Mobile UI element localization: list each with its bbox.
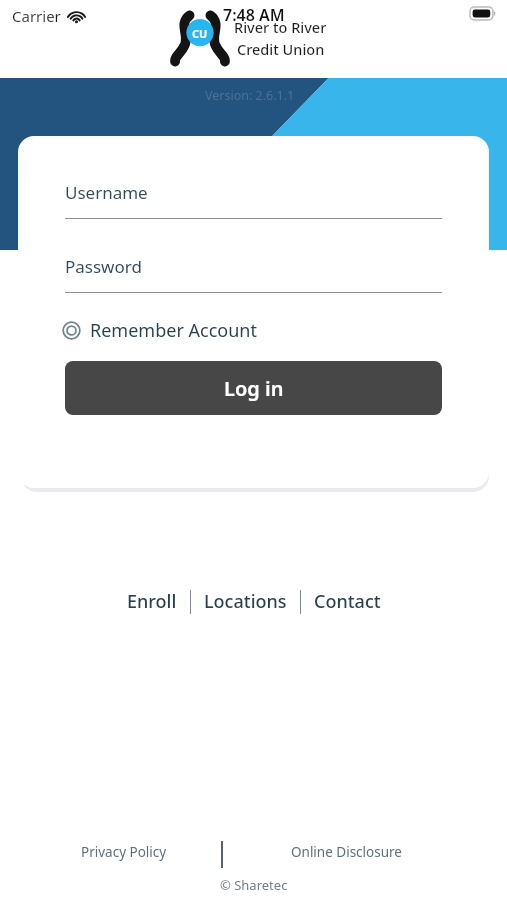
staticText: Remember Account bbox=[90, 318, 257, 343]
staticText: Password bbox=[65, 255, 142, 278]
button[interactable]: Contact bbox=[309, 586, 386, 617]
button[interactable]: Password bbox=[65, 255, 442, 293]
button[interactable]: Privacy Policy bbox=[79, 841, 169, 863]
staticText: Credit Union bbox=[237, 39, 325, 59]
staticText: © Sharetec bbox=[220, 876, 288, 894]
staticText: 7:48 AM bbox=[223, 4, 285, 26]
staticText: Username bbox=[65, 181, 148, 204]
button[interactable]: Online Disclosure bbox=[289, 841, 404, 863]
staticText: CU bbox=[192, 26, 208, 41]
staticText: Carrier bbox=[12, 6, 61, 26]
staticText: River to River bbox=[234, 17, 327, 37]
other: River to River Credit Union logo bbox=[171, 13, 229, 62]
button[interactable]: Locations bbox=[199, 586, 292, 617]
button[interactable]: Remember Account bbox=[62, 314, 257, 346]
button[interactable]: Enroll bbox=[122, 586, 182, 617]
button[interactable]: Username bbox=[65, 181, 442, 219]
staticText: Log in bbox=[224, 375, 284, 402]
button[interactable]: Log in bbox=[65, 361, 442, 415]
staticText: Version: 2.6.1.1 bbox=[205, 87, 295, 104]
